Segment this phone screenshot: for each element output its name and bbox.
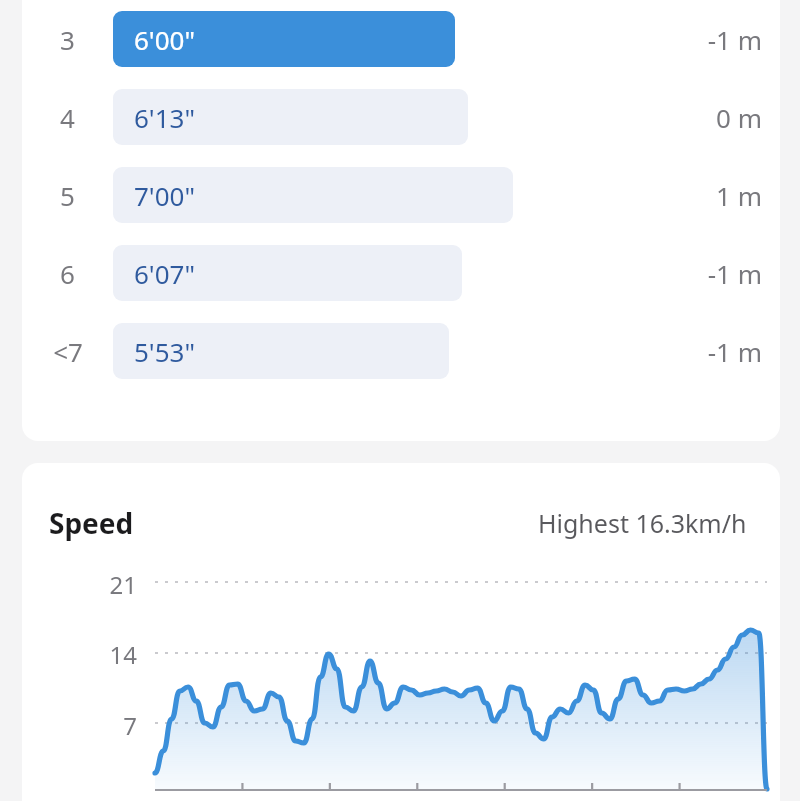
- staticText: -1 m: [707, 22, 762, 57]
- staticText: 3: [60, 22, 75, 57]
- button[interactable]: <7: [22, 312, 780, 390]
- button[interactable]: 4: [22, 78, 780, 156]
- staticText: 1 m: [716, 178, 762, 213]
- staticText: 14: [69, 638, 137, 671]
- button[interactable]: 5: [22, 156, 780, 234]
- staticText: 6'07": [134, 256, 196, 291]
- staticText: 6: [60, 256, 75, 291]
- staticText: 6'13": [134, 100, 196, 135]
- staticText: 7'00": [134, 178, 196, 213]
- staticText: 6'00": [134, 22, 196, 57]
- staticText: Speed: [49, 504, 134, 542]
- staticText: 0 m: [716, 100, 762, 135]
- staticText: 4: [60, 100, 75, 135]
- staticText: -1 m: [707, 334, 762, 369]
- staticText: Highest 16.3km/h: [538, 506, 747, 540]
- button[interactable]: 3: [22, 0, 780, 78]
- staticText: 5'53": [134, 334, 196, 369]
- staticText: 5: [60, 178, 75, 213]
- staticText: 21: [69, 568, 137, 601]
- button[interactable]: 6: [22, 234, 780, 312]
- staticText: -1 m: [707, 256, 762, 291]
- staticText: <7: [53, 334, 83, 369]
- staticText: 7: [69, 709, 137, 742]
